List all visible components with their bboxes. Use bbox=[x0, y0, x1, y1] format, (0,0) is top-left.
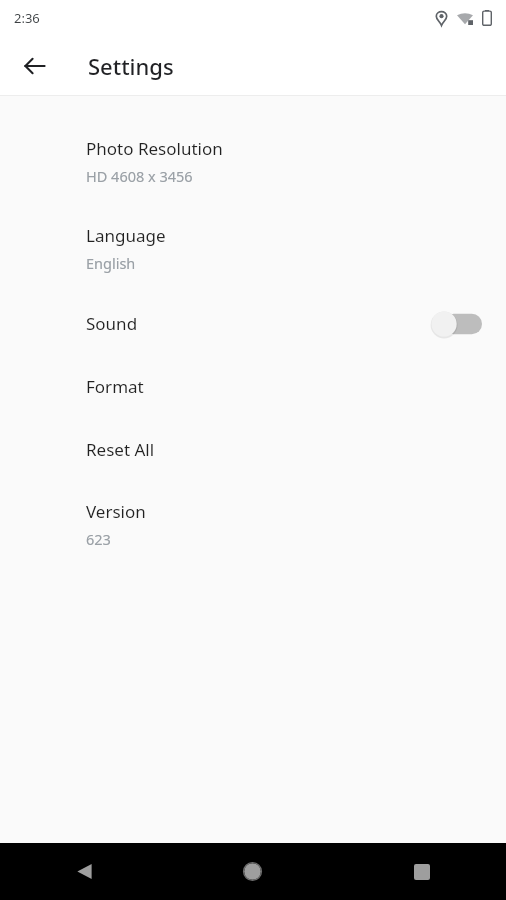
staticText: Reset All bbox=[86, 438, 155, 461]
button[interactable]: Back bbox=[11, 42, 59, 90]
staticText: English bbox=[86, 253, 136, 273]
button[interactable]: Format bbox=[0, 355, 506, 418]
staticText: Photo Resolution bbox=[86, 137, 223, 160]
staticText: Language bbox=[86, 224, 166, 247]
button[interactable]: Back bbox=[0, 843, 168, 900]
button[interactable]: Sound bbox=[0, 292, 506, 355]
staticText: 623 bbox=[86, 529, 111, 549]
button[interactable]: Recent apps bbox=[337, 843, 506, 900]
button[interactable]: Version bbox=[0, 481, 506, 568]
staticText: 2:36 bbox=[14, 9, 40, 27]
staticText: Sound bbox=[86, 312, 138, 335]
button[interactable]: Reset All bbox=[0, 418, 506, 481]
button[interactable]: Language bbox=[0, 205, 506, 292]
button[interactable]: Sound toggle bbox=[430, 307, 482, 341]
button[interactable]: Home bbox=[168, 843, 337, 900]
staticText: HD 4608 x 3456 bbox=[86, 166, 193, 186]
staticText: Settings bbox=[88, 51, 174, 81]
button[interactable]: Photo Resolution bbox=[0, 118, 506, 205]
staticText: Version bbox=[86, 500, 146, 523]
staticText: Format bbox=[86, 375, 144, 398]
